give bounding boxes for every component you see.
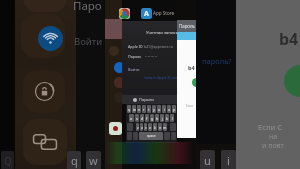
- button[interactable]: Rotation lock: [23, 70, 65, 113]
- staticText: c: [145, 125, 147, 130]
- staticText: s: [136, 116, 138, 121]
- staticText: d: [141, 116, 144, 121]
- staticText: пароль?: [202, 56, 232, 66]
- staticText: f: [146, 116, 148, 121]
- staticText: x: [141, 125, 143, 130]
- staticText: на: [269, 132, 278, 142]
- staticText: Войти: [74, 35, 103, 48]
- staticText: z: [137, 125, 139, 130]
- staticText: и повт: [262, 141, 284, 151]
- staticText: Пароль: [179, 23, 195, 29]
- staticText: Apple ID: [128, 44, 143, 49]
- staticText: Паро: [73, 0, 102, 14]
- staticText: App Store: [153, 10, 175, 16]
- staticText: g: [151, 116, 154, 121]
- staticText: o: [168, 107, 171, 112]
- staticText: w: [89, 153, 98, 168]
- staticText: Учетная запись: [146, 30, 179, 36]
- staticText: u: [204, 153, 211, 168]
- staticText: i: [164, 107, 165, 112]
- staticText: a: [130, 116, 133, 121]
- button[interactable]: Screen mirroring: [23, 119, 67, 165]
- staticText: p: [173, 107, 176, 112]
- staticText: Q: [4, 154, 12, 168]
- staticText: A: [144, 9, 149, 19]
- staticText: b4: [188, 64, 195, 71]
- staticText: r: [143, 107, 145, 112]
- staticText: Пароли: [139, 97, 154, 102]
- staticText: t: [148, 107, 150, 112]
- staticText: h: [156, 116, 159, 121]
- staticText: m: [163, 125, 167, 130]
- staticText: Пароль: [128, 54, 142, 59]
- staticText: q: [128, 107, 131, 112]
- staticText: y: [153, 107, 155, 112]
- staticText: Забыли Apple ID или пароль?: [144, 75, 193, 80]
- staticText: n: [159, 125, 162, 130]
- staticText: j: [162, 116, 163, 121]
- staticText: space: [147, 134, 156, 138]
- staticText: •••••••••: [145, 54, 158, 59]
- staticText: e: [138, 107, 141, 112]
- staticText: u: [158, 107, 161, 112]
- staticText: Войти: [128, 67, 140, 72]
- staticText: w: [133, 107, 136, 112]
- staticText: k: [166, 116, 168, 121]
- staticText: Если: [186, 104, 194, 108]
- button[interactable]: Wi-Fi: [38, 26, 63, 51]
- staticText: b41: [279, 28, 300, 50]
- staticText: b41@appstore.ru: [144, 44, 174, 49]
- staticText: l: [172, 116, 173, 121]
- staticText: q: [71, 153, 78, 168]
- staticText: i: [227, 153, 230, 168]
- staticText: Если С: [258, 122, 282, 132]
- staticText: v: [149, 125, 151, 130]
- staticText: b: [154, 125, 157, 130]
